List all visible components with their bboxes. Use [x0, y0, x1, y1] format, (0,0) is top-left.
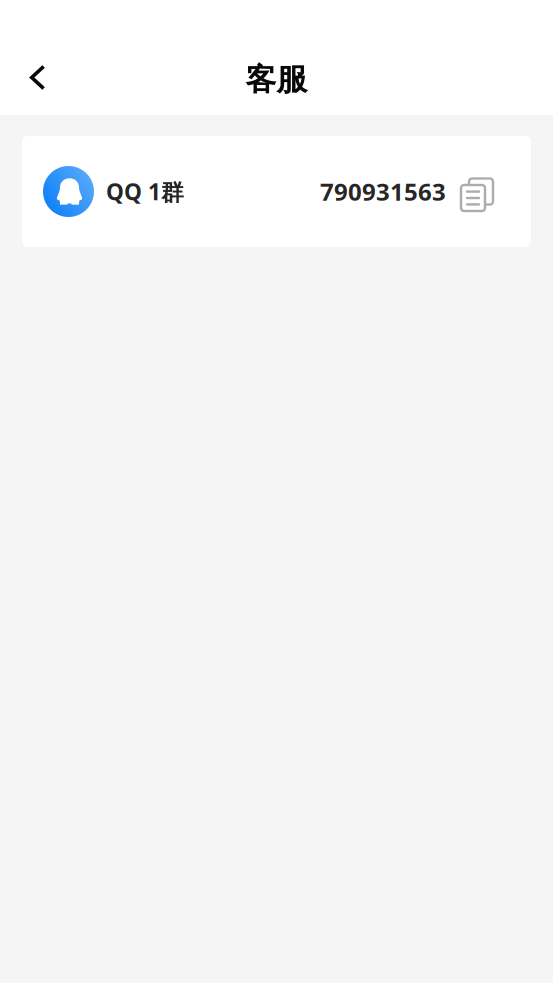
staticText: QQ 1群	[106, 176, 184, 207]
button[interactable]: Back	[16, 57, 60, 101]
button[interactable]: Copy QQ group number	[446, 136, 531, 247]
button[interactable]: QQ 1群	[22, 136, 446, 247]
staticText: 790931563	[320, 176, 446, 207]
staticText: 客服	[245, 61, 307, 98]
